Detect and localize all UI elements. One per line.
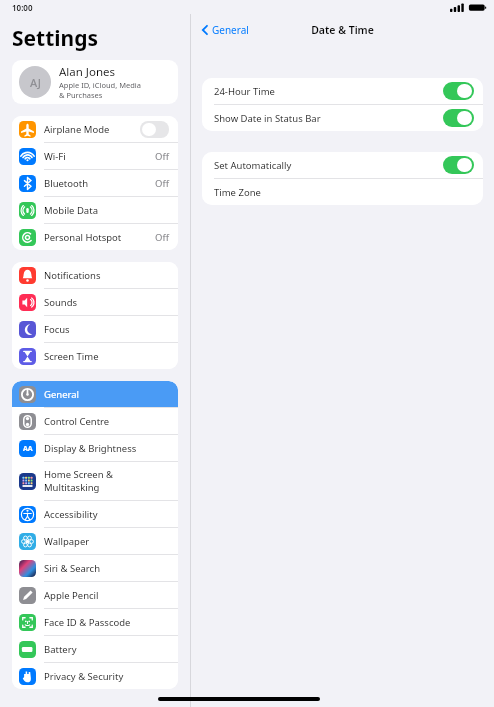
button[interactable]: Home Screen &: [12, 462, 178, 500]
staticText: & Purchases: [59, 90, 103, 100]
staticText: Accessibility: [44, 508, 169, 521]
staticText: General: [44, 388, 169, 401]
button[interactable]: Apple Pencil: [12, 582, 178, 608]
button[interactable]: General: [12, 381, 178, 407]
button[interactable]: Personal Hotspot: [12, 224, 178, 250]
staticText: Off: [155, 231, 169, 244]
staticText: Apple ID, iCloud, Media: [59, 80, 141, 90]
button[interactable]: Show Date in Status Bar: [202, 105, 483, 131]
button[interactable]: Battery: [12, 636, 178, 662]
staticText: Mobile Data: [44, 204, 169, 217]
staticText: Off: [155, 150, 169, 163]
button[interactable]: Face ID & Passcode: [12, 609, 178, 635]
button[interactable]: General: [198, 21, 252, 39]
button[interactable]: Wi-Fi: [12, 143, 178, 169]
button[interactable]: Toggle: [443, 109, 474, 127]
staticText: Privacy & Security: [44, 670, 169, 683]
button[interactable]: Toggle: [443, 156, 474, 174]
button[interactable]: Toggle: [443, 82, 474, 100]
staticText: Home Screen &: [44, 468, 114, 481]
staticText: Set Automatically: [214, 159, 443, 172]
staticText: Wi-Fi: [44, 150, 155, 163]
staticText: Date & Time: [311, 23, 374, 37]
staticText: Display & Brightness: [44, 442, 169, 455]
staticText: Alan Jones: [59, 64, 116, 80]
button[interactable]: Privacy & Security: [12, 663, 178, 689]
button[interactable]: Notifications: [12, 262, 178, 288]
button[interactable]: Time Zone: [202, 179, 483, 205]
staticText: Personal Hotspot: [44, 231, 155, 244]
staticText: Siri & Search: [44, 562, 169, 575]
button[interactable]: Accessibility: [12, 501, 178, 527]
staticText: AJ: [30, 75, 41, 90]
staticText: Time Zone: [214, 186, 474, 199]
button[interactable]: Focus: [12, 316, 178, 342]
button[interactable]: AA: [12, 435, 178, 461]
staticText: Off: [155, 177, 169, 190]
staticText: Sounds: [44, 296, 169, 309]
staticText: 24-Hour Time: [214, 85, 443, 98]
staticText: General: [212, 23, 249, 37]
button[interactable]: Toggle: [140, 121, 169, 138]
staticText: AA: [23, 444, 33, 454]
staticText: Notifications: [44, 269, 169, 282]
staticText: Apple Pencil: [44, 589, 169, 602]
staticText: Airplane Mode: [44, 123, 140, 136]
button[interactable]: Mobile Data: [12, 197, 178, 223]
staticText: Settings: [12, 24, 99, 53]
button[interactable]: Set Automatically: [202, 152, 483, 178]
button[interactable]: 24-Hour Time: [202, 78, 483, 104]
staticText: Wallpaper: [44, 535, 169, 548]
button[interactable]: Siri & Search: [12, 555, 178, 581]
staticText: Control Centre: [44, 415, 169, 428]
button[interactable]: Screen Time: [12, 343, 178, 369]
staticText: Bluetooth: [44, 177, 155, 190]
button[interactable]: Control Centre: [12, 408, 178, 434]
staticText: 10:00: [12, 2, 33, 13]
staticText: Show Date in Status Bar: [214, 112, 443, 125]
button[interactable]: AJ: [12, 60, 178, 104]
staticText: Screen Time: [44, 350, 169, 363]
button[interactable]: Wallpaper: [12, 528, 178, 554]
staticText: Face ID & Passcode: [44, 616, 169, 629]
staticText: Multitasking: [44, 481, 100, 494]
button[interactable]: Sounds: [12, 289, 178, 315]
button[interactable]: Airplane Mode: [12, 116, 178, 142]
staticText: Battery: [44, 643, 169, 656]
staticText: Focus: [44, 323, 169, 336]
button[interactable]: Bluetooth: [12, 170, 178, 196]
